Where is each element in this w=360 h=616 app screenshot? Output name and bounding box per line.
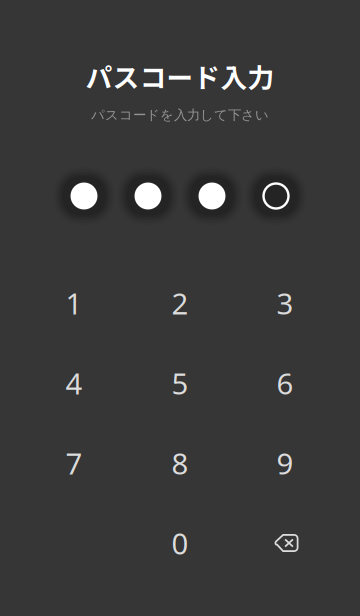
button[interactable]: 7 — [24, 425, 124, 501]
button[interactable]: 6 — [235, 345, 335, 421]
button[interactable]: 5 — [130, 345, 230, 421]
staticText: 8 — [171, 443, 188, 482]
button[interactable]: 4 — [24, 345, 124, 421]
staticText: パスコードを入力して下さい — [91, 107, 269, 123]
button[interactable]: 2 — [130, 265, 230, 341]
staticText: 4 — [65, 363, 82, 402]
staticText: 7 — [65, 443, 82, 482]
button[interactable]: 3 — [235, 265, 335, 341]
staticText: 1 — [65, 283, 82, 322]
button[interactable]: 1 — [24, 265, 124, 341]
staticText: 2 — [171, 283, 188, 322]
button[interactable]: 0 — [130, 505, 230, 581]
button[interactable]: 8 — [130, 425, 230, 501]
button[interactable]: Delete — [236, 505, 336, 581]
staticText: 3 — [276, 283, 293, 322]
staticText: 6 — [276, 363, 293, 402]
staticText: 5 — [171, 363, 188, 402]
staticText: 0 — [171, 523, 188, 562]
staticText: パスコード入力 — [85, 57, 274, 95]
staticText: 9 — [276, 443, 293, 482]
button[interactable]: 9 — [235, 425, 335, 501]
